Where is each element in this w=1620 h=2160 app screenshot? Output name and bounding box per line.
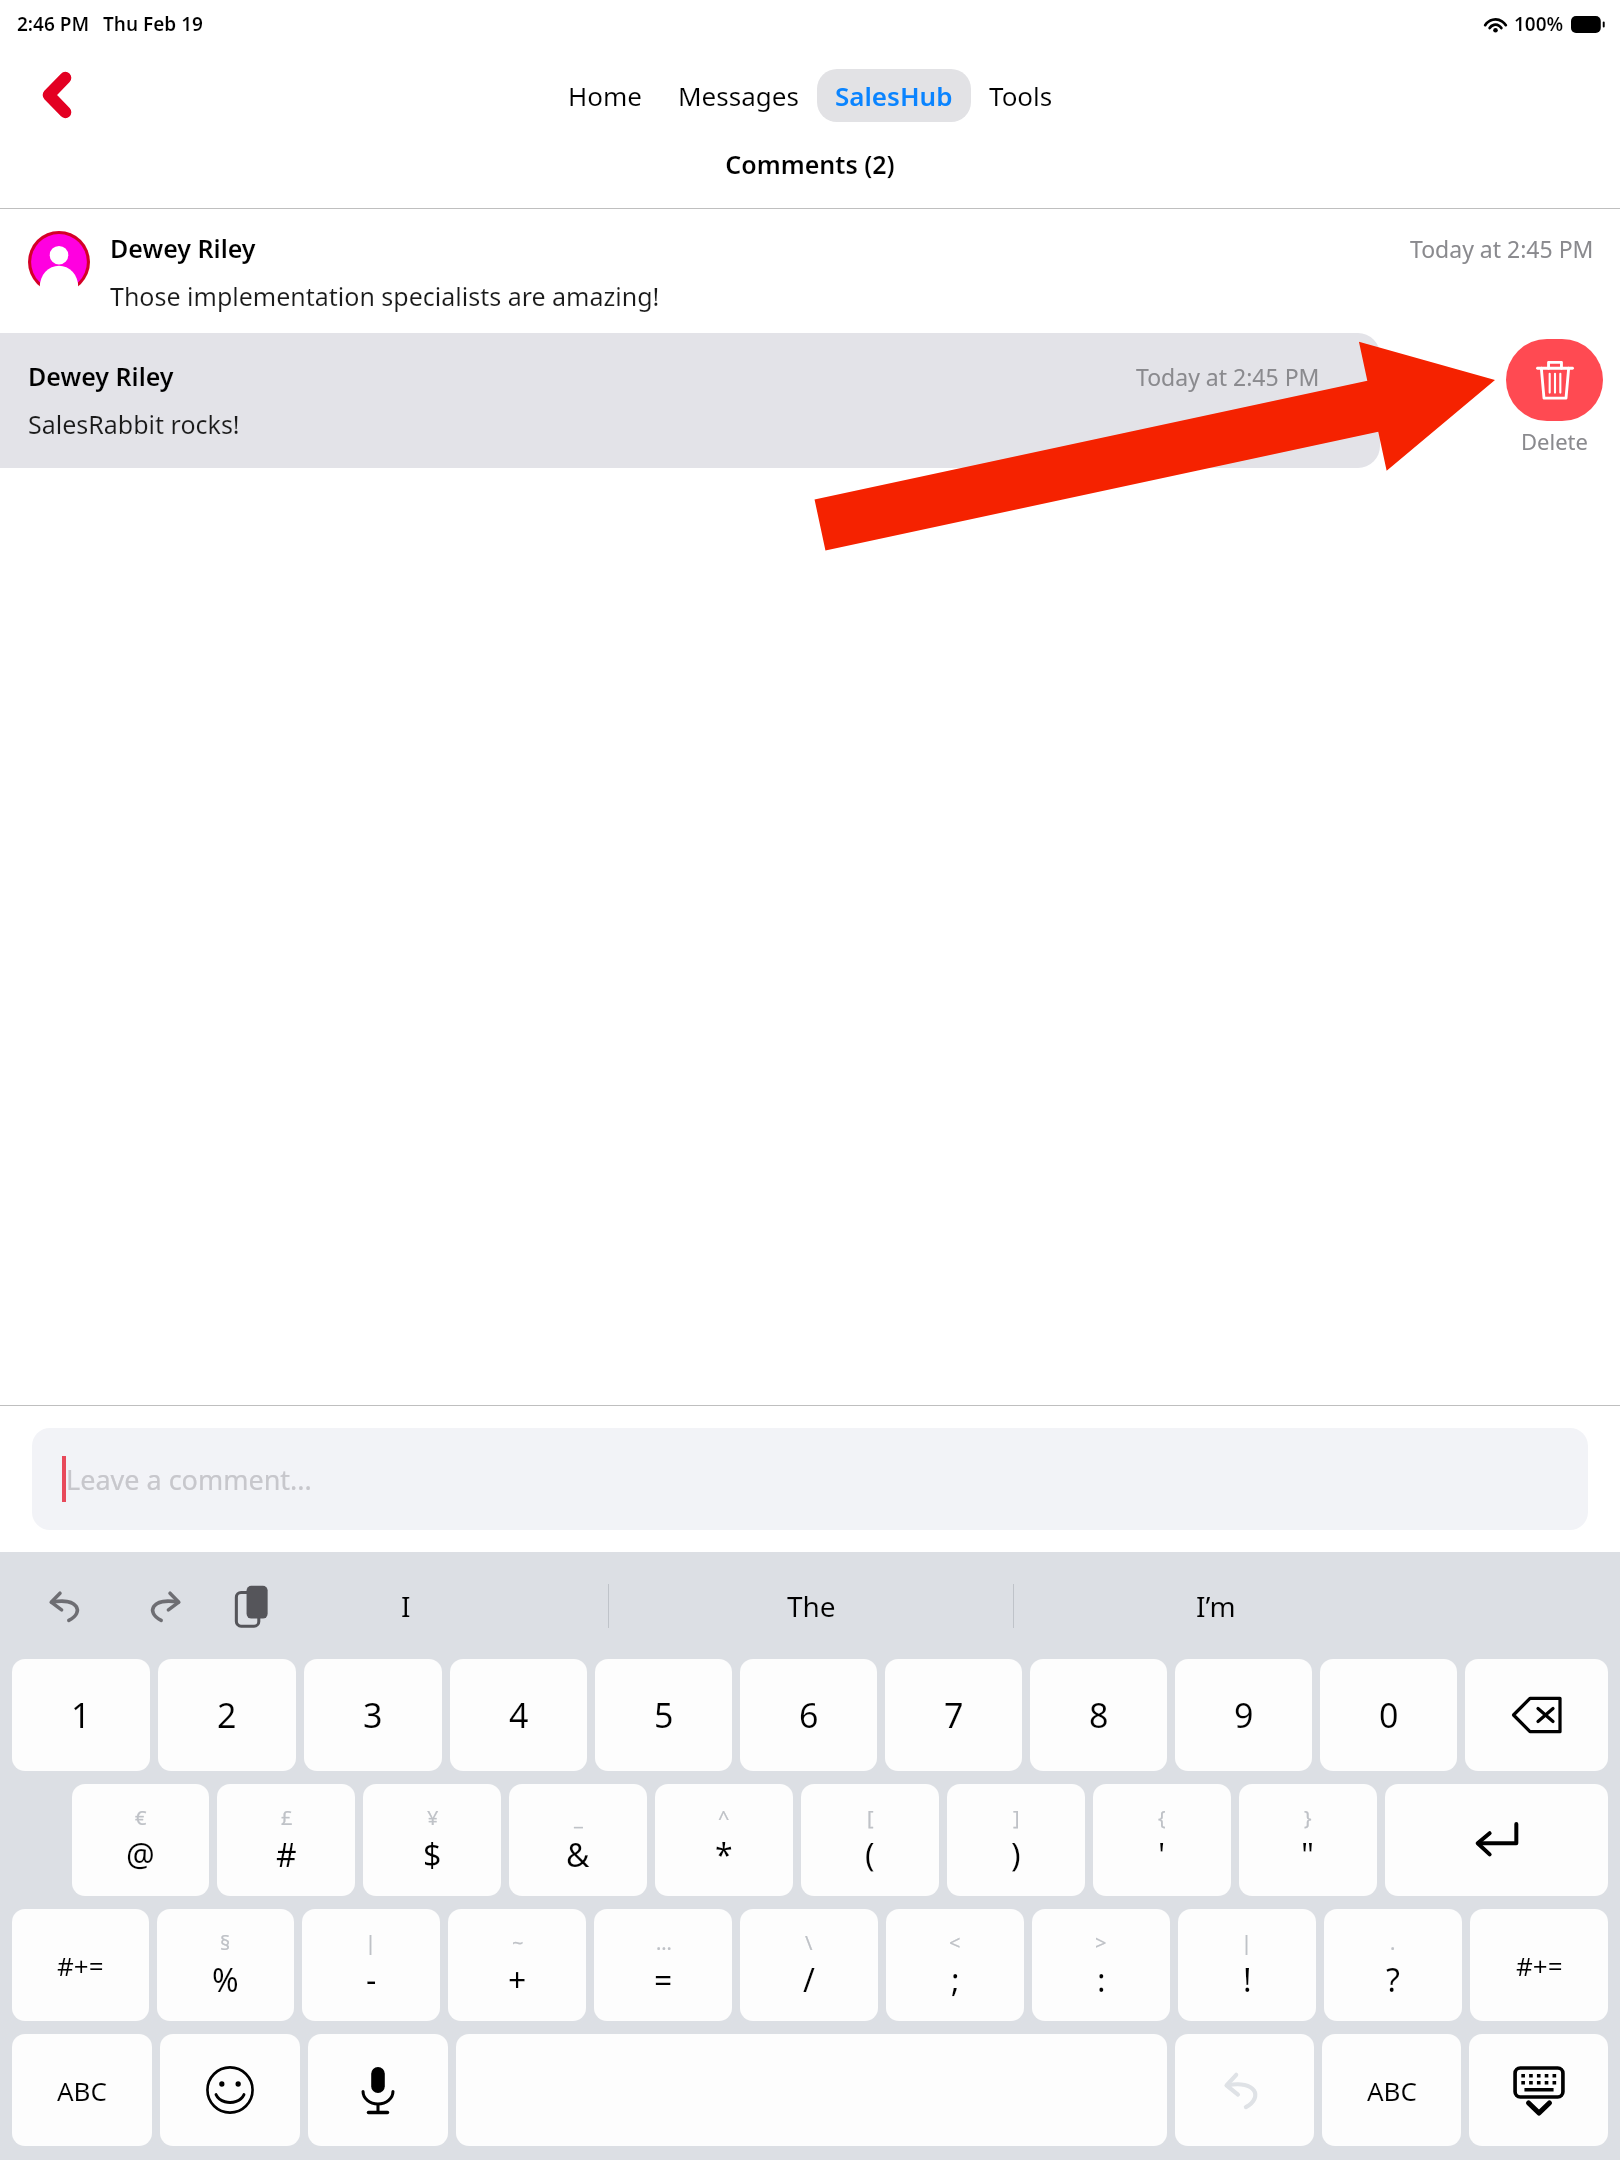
staticText: | [365,1929,377,1956]
button[interactable]: Home [550,69,660,122]
staticText: 7 [944,1692,964,1738]
button[interactable]: Leave a comment... [32,1428,1588,1530]
staticText: @ [126,1833,155,1877]
button[interactable]: 4 [450,1659,587,1771]
button[interactable]: < [886,1909,1024,2021]
staticText: < [949,1929,961,1956]
button[interactable]: Dewey Riley [0,333,1380,468]
button[interactable]: 8 [1030,1659,1167,1771]
button[interactable]: 5 [595,1659,732,1771]
staticText: = [654,1958,673,2002]
button[interactable]: 9 [1175,1659,1312,1771]
button[interactable]: #+= [1470,1909,1608,2021]
staticText: + [508,1958,527,2002]
button[interactable]: ^ [655,1784,793,1896]
staticText: 1 [71,1692,91,1738]
staticText: % [212,1958,239,2002]
staticText: { [1158,1804,1166,1831]
button[interactable]: SalesHub [817,69,971,122]
staticText: 9 [1234,1692,1254,1738]
button[interactable]: [ [801,1784,939,1896]
staticText: | [1241,1929,1253,1956]
button[interactable]: Messages [660,69,817,122]
staticText: Home [568,78,642,113]
staticText: ; [951,1958,960,2002]
staticText: ^ [718,1804,730,1831]
staticText: } [1304,1804,1312,1831]
staticText: 6 [799,1692,819,1738]
button[interactable]: Return [1385,1784,1608,1896]
button[interactable]: ABC [12,2034,152,2146]
staticText: Dewey Riley [28,359,174,393]
staticText: Messages [678,78,799,113]
staticText: > [1095,1929,1107,1956]
staticText: " [1301,1833,1315,1877]
button[interactable]: Paste [224,1578,280,1634]
staticText: The [787,1587,836,1625]
button[interactable]: { [1093,1784,1231,1896]
staticText: [ [867,1804,874,1831]
button[interactable]: The [609,1571,1013,1641]
staticText: 2:46 PM [17,11,90,37]
button[interactable]: . [1324,1909,1462,2021]
button[interactable]: 3 [304,1659,442,1771]
staticText: #+= [57,1948,104,1983]
button[interactable]: Backspace [1465,1659,1608,1771]
button[interactable]: … [594,1909,732,2021]
button[interactable]: ABC [1322,2034,1461,2146]
staticText: § [220,1929,231,1956]
button[interactable]: Redo [134,1578,190,1634]
button[interactable]: #+= [12,1909,149,2021]
staticText: € [135,1804,147,1831]
staticText: Leave a comment... [66,1461,312,1498]
staticText: 2 [217,1692,237,1738]
staticText: Tools [989,78,1053,113]
staticText: ? [1386,1958,1400,2002]
button[interactable]: | [302,1909,440,2021]
button[interactable]: | [1178,1909,1316,2021]
button[interactable]: § [157,1909,294,2021]
button[interactable]: ¥ [363,1784,501,1896]
button[interactable]: I’m [1014,1571,1418,1641]
button[interactable]: > [1032,1909,1170,2021]
staticText: \ [805,1929,813,1956]
staticText: 3 [363,1692,383,1738]
staticText: … [656,1929,672,1956]
staticText: SalesHub [835,78,953,113]
staticText: & [566,1833,590,1877]
staticText: 100% [1514,11,1564,37]
button[interactable]: 2 [158,1659,296,1771]
button[interactable]: Tools [971,69,1071,122]
staticText: 8 [1089,1692,1109,1738]
button[interactable]: \ [740,1909,878,2021]
staticText: £ [281,1804,293,1831]
button[interactable]: Undo [1175,2034,1314,2146]
staticText: / [803,1958,815,2002]
button[interactable]: Hide keyboard [1469,2034,1608,2146]
staticText: $ [423,1833,442,1877]
button[interactable]: Delete [1506,339,1603,421]
button[interactable]: ] [947,1784,1085,1896]
button[interactable]: ~ [448,1909,586,2021]
button[interactable]: 0 [1320,1659,1457,1771]
button[interactable]: Dictate [308,2034,448,2146]
staticText: ~ [512,1929,524,1956]
staticText: #+= [1516,1948,1563,1983]
button[interactable]: 1 [12,1659,150,1771]
button[interactable]: € [72,1784,209,1896]
staticText: Comments (2) [0,147,1620,181]
staticText: 5 [654,1692,674,1738]
button[interactable]: £ [217,1784,355,1896]
staticText: I [401,1587,411,1625]
staticText: ' [1158,1833,1166,1877]
button[interactable]: Undo [40,1578,96,1634]
button[interactable]: } [1239,1784,1377,1896]
staticText: * [715,1833,733,1877]
button[interactable]: _ [509,1784,647,1896]
button[interactable]: 6 [740,1659,877,1771]
button[interactable]: 7 [885,1659,1022,1771]
button[interactable]: Emoji [160,2034,300,2146]
button[interactable]: Back [22,60,91,129]
button[interactable]: I [203,1571,608,1641]
